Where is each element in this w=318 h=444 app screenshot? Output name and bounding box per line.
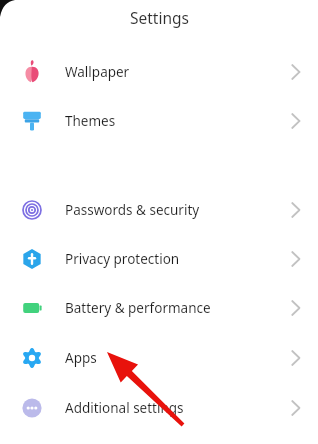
button[interactable]: Passwords & security xyxy=(0,185,318,235)
button[interactable]: Themes xyxy=(0,96,318,146)
staticText: Wallpaper xyxy=(65,63,130,81)
button[interactable]: Wallpaper xyxy=(0,47,318,97)
staticText: Privacy protection xyxy=(65,250,180,268)
button[interactable]: Additional settings xyxy=(0,383,318,433)
staticText: Passwords & security xyxy=(65,201,200,219)
staticText: Themes xyxy=(65,112,116,130)
staticText: Battery & performance xyxy=(65,299,211,317)
staticText: Settings xyxy=(130,7,189,28)
button[interactable]: Apps xyxy=(0,333,318,383)
button[interactable]: Privacy protection xyxy=(0,234,318,284)
staticText: Apps xyxy=(65,349,97,367)
staticText: Additional settings xyxy=(65,399,184,417)
button[interactable]: Battery & performance xyxy=(0,283,318,333)
